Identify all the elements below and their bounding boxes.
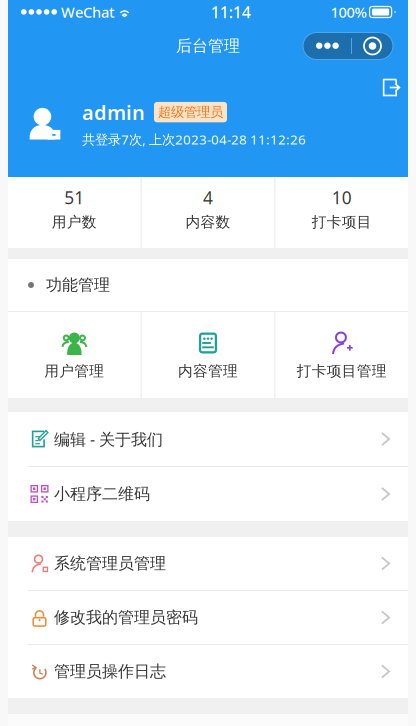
staticText: 内容数: [185, 213, 230, 231]
staticText: 小程序二维码: [54, 484, 150, 504]
button[interactable]: Menu and close: [303, 32, 393, 59]
staticText: 打卡项目管理: [297, 362, 387, 380]
staticText: 后台管理: [176, 36, 240, 56]
staticText: 11:14: [211, 1, 251, 23]
button[interactable]: 用户管理: [8, 312, 141, 398]
staticText: admin: [82, 99, 145, 125]
button[interactable]: 管理员操作日志: [8, 645, 408, 698]
staticText: 100%: [331, 2, 367, 22]
button[interactable]: 系统管理员管理: [8, 537, 408, 590]
staticText: 用户数: [52, 213, 97, 231]
staticText: 超级管理员: [158, 104, 223, 120]
staticText: WeChat: [61, 2, 115, 22]
button[interactable]: Log out: [377, 74, 404, 101]
staticText: 内容管理: [178, 362, 238, 380]
button[interactable]: 10: [275, 177, 408, 248]
button[interactable]: 4: [142, 177, 274, 248]
button[interactable]: 内容管理: [142, 312, 274, 398]
staticText: 51: [64, 186, 84, 209]
button[interactable]: 51: [8, 177, 141, 248]
staticText: 系统管理员管理: [54, 554, 166, 573]
button[interactable]: 修改我的管理员密码: [8, 591, 408, 644]
staticText: 用户管理: [44, 362, 104, 380]
button[interactable]: 小程序二维码: [8, 467, 408, 521]
staticText: 10: [332, 186, 352, 209]
staticText: 编辑 - 关于我们: [54, 428, 163, 450]
button[interactable]: 编辑 - 关于我们: [8, 412, 408, 466]
staticText: 管理员操作日志: [54, 662, 166, 681]
staticText: 4: [203, 186, 213, 209]
staticText: 修改我的管理员密码: [54, 608, 198, 627]
button[interactable]: 打卡项目管理: [275, 312, 408, 398]
staticText: 共登录7次, 上次2023-04-28 11:12:26: [82, 130, 306, 148]
staticText: 打卡项目: [312, 213, 372, 231]
staticText: 功能管理: [46, 275, 110, 295]
